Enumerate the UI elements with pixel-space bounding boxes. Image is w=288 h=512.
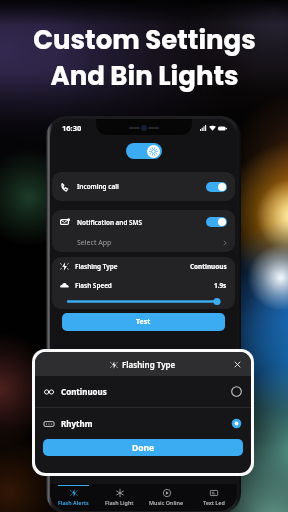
staticText: Rhythm xyxy=(61,418,93,429)
button[interactable]: Toggle xyxy=(206,182,227,192)
button[interactable]: Test xyxy=(62,313,225,331)
staticText: Select App xyxy=(77,238,112,248)
button[interactable]: Music Online xyxy=(143,484,190,511)
button[interactable]: Text Led xyxy=(190,484,237,511)
button[interactable]: Close xyxy=(231,358,244,371)
staticText: Test xyxy=(136,317,151,327)
button[interactable]: Power toggle xyxy=(126,143,162,159)
button[interactable]: Notification and SMS xyxy=(52,210,235,252)
staticText: Incoming call xyxy=(77,182,119,191)
button[interactable]: Rhythm xyxy=(35,408,251,439)
button[interactable]: Flash Light xyxy=(96,484,143,511)
staticText: Continuous xyxy=(190,262,227,271)
button[interactable]: Flashing Type xyxy=(52,257,235,309)
staticText: Flash Light xyxy=(105,499,134,506)
staticText: Flash Speed xyxy=(75,281,112,290)
staticText: Notification and SMS xyxy=(77,218,143,227)
staticText: 1.9s xyxy=(214,281,227,290)
staticText: Music Online xyxy=(149,499,184,506)
staticText: And Bin Lights xyxy=(50,58,239,94)
staticText: Flashing Type xyxy=(122,359,176,370)
staticText: Custom Settings xyxy=(33,22,256,58)
staticText: Done xyxy=(132,442,155,454)
staticText: Text Led xyxy=(203,499,225,506)
staticText: Flashing Type xyxy=(75,262,118,271)
staticText: 16:30 xyxy=(62,123,82,133)
staticText: Flash Alerts xyxy=(58,499,89,506)
staticText: Continuous xyxy=(61,386,107,397)
button[interactable]: Incoming call xyxy=(52,172,235,201)
button[interactable]: Done xyxy=(43,439,243,456)
button[interactable]: Continuous xyxy=(35,376,251,407)
button[interactable]: Toggle xyxy=(206,217,227,227)
button[interactable]: Flash Alerts xyxy=(50,484,96,511)
